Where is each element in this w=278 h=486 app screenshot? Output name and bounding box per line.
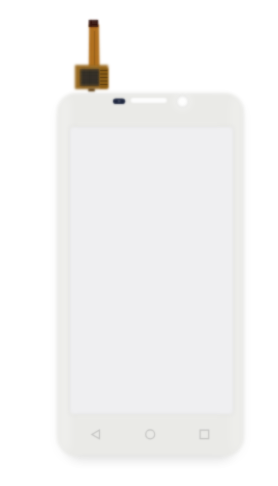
button[interactable]: Home (128, 420, 172, 448)
button[interactable]: Back (76, 420, 120, 448)
button[interactable]: Recent apps (182, 420, 226, 448)
